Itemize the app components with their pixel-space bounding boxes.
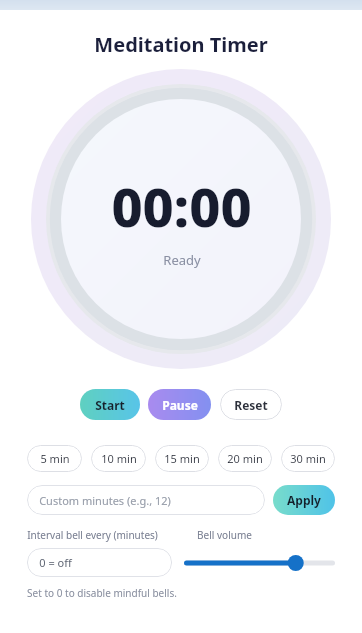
staticText: Set to 0 to disable mindful bells. — [27, 586, 177, 600]
button[interactable]: 15 min — [155, 445, 209, 472]
staticText: 00:00 — [111, 169, 252, 243]
staticText: Apply — [287, 492, 321, 508]
staticText: Pause — [162, 397, 198, 413]
button[interactable]: 5 min — [27, 445, 82, 472]
staticText: 10 min — [101, 451, 137, 466]
staticText: Bell volume — [197, 528, 252, 542]
button[interactable]: Custom minutes (e.g., 12) — [27, 485, 265, 515]
button[interactable]: Start — [80, 389, 140, 420]
staticText: 5 min — [40, 451, 70, 466]
button[interactable]: 20 min — [218, 445, 272, 472]
button[interactable]: Bell volume slider — [184, 549, 335, 577]
button[interactable]: Pause — [148, 389, 211, 420]
button[interactable]: Apply — [273, 485, 335, 515]
staticText: 20 min — [227, 451, 263, 466]
staticText: Interval bell every (minutes) — [27, 528, 158, 542]
staticText: Reset — [234, 397, 268, 413]
button[interactable]: 30 min — [281, 445, 335, 472]
staticText: 0 = off — [39, 555, 72, 570]
staticText: Ready — [163, 251, 201, 269]
button[interactable]: 10 min — [91, 445, 146, 472]
button[interactable]: Reset — [220, 389, 282, 420]
staticText: 15 min — [164, 451, 200, 466]
staticText: Meditation Timer — [94, 31, 268, 58]
staticText: 30 min — [290, 451, 326, 466]
staticText: Start — [95, 397, 125, 413]
staticText: Custom minutes (e.g., 12) — [39, 493, 171, 508]
button[interactable]: 0 = off — [27, 548, 172, 577]
